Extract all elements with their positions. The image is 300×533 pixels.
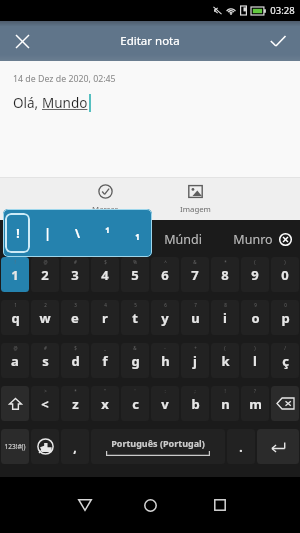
button[interactable]: ^ (151, 257, 179, 292)
button[interactable]: 123!#() (1, 429, 29, 464)
staticText: @ (43, 259, 48, 265)
button[interactable]: ( (211, 343, 239, 378)
staticText: ! (14, 259, 16, 265)
staticText: 1 (11, 266, 19, 284)
button[interactable]: 4 (91, 300, 119, 335)
button[interactable]: @ (31, 257, 59, 292)
staticText: 0 (281, 266, 289, 284)
staticText: . (239, 439, 243, 455)
staticText: m (249, 395, 262, 413)
button[interactable]: & (121, 343, 149, 378)
button[interactable]: $ (61, 343, 89, 378)
button[interactable]: ( (241, 257, 269, 292)
staticText: ' (134, 388, 136, 394)
staticText: 8 (224, 302, 227, 308)
button[interactable]: _ (91, 343, 119, 378)
button[interactable]: & (181, 257, 209, 292)
staticText: _ (104, 345, 106, 351)
staticText: \ (75, 225, 80, 241)
staticText: a (11, 352, 19, 370)
button[interactable]: : (151, 386, 179, 421)
button[interactable]: 9 (241, 300, 269, 335)
button[interactable]: " (91, 386, 119, 421)
button[interactable]: + (181, 343, 209, 378)
button[interactable]: * (211, 257, 239, 292)
staticText: 6 (161, 266, 169, 284)
button[interactable]: # (61, 257, 89, 292)
staticText: 123!#() (4, 442, 26, 451)
staticText: 7 (191, 266, 199, 284)
button[interactable]: ) (241, 343, 269, 378)
button[interactable]: Imagem (162, 177, 228, 219)
staticText: * (224, 259, 227, 265)
button[interactable]: 2 (31, 300, 59, 335)
button[interactable]: 1 (1, 300, 29, 335)
staticText: # (44, 345, 47, 351)
staticText: & (133, 345, 137, 351)
button[interactable]: Voltar (63, 483, 107, 527)
staticText: ( (254, 259, 256, 265)
button[interactable]: Shift (1, 386, 29, 421)
staticText: 14 de Dez de 2020, 02:45 (13, 73, 116, 85)
button[interactable]: % (121, 257, 149, 292)
button[interactable]: # (31, 343, 59, 378)
staticText: ! (224, 388, 226, 394)
button[interactable]: Fechar sugestões (275, 229, 295, 249)
staticText: g (131, 352, 140, 370)
staticText: ¹ (105, 225, 110, 241)
button[interactable]: , (61, 429, 89, 464)
button[interactable]: 8 (211, 300, 239, 335)
button[interactable]: ' (121, 386, 149, 421)
button[interactable]: Início (128, 483, 172, 527)
button[interactable]: Munro (219, 222, 287, 256)
button[interactable]: Cancelar (0, 21, 44, 61)
button[interactable]: / (271, 343, 299, 378)
staticText: r (102, 309, 108, 327)
staticText: e (71, 309, 79, 327)
button[interactable]: ! (211, 386, 239, 421)
button[interactable]: Marcar (72, 177, 138, 219)
button[interactable]: 7 (181, 300, 209, 335)
staticText: 4 (104, 302, 107, 308)
button[interactable]: 3 (61, 300, 89, 335)
button[interactable]: ! (1, 257, 29, 292)
staticText: v (161, 395, 169, 413)
button[interactable]: Backspace (271, 386, 299, 421)
staticText: * (74, 388, 77, 394)
button[interactable]: - (151, 343, 179, 378)
staticText: u (191, 309, 200, 327)
button[interactable]: 0 (271, 300, 299, 335)
staticText: # (74, 259, 77, 265)
button[interactable]: 5 (121, 300, 149, 335)
staticText: 0 (284, 302, 287, 308)
button[interactable]: * (61, 386, 89, 421)
staticText: 8 (221, 266, 229, 284)
button[interactable]: ? (241, 386, 269, 421)
button[interactable]: ; (181, 386, 209, 421)
staticText: Munro (233, 231, 273, 248)
staticText: w (39, 309, 51, 327)
button[interactable]: Múndi (150, 222, 216, 256)
button[interactable]: Recentes (198, 483, 242, 527)
button[interactable]: ) (271, 257, 299, 292)
button[interactable]: . (227, 429, 255, 464)
button[interactable]: @ (1, 343, 29, 378)
staticText: p (281, 309, 290, 327)
staticText: d (71, 352, 80, 370)
button[interactable]: Português (Portugal) (91, 429, 225, 464)
button[interactable]: 6 (151, 300, 179, 335)
staticText: Editar nota (120, 33, 180, 49)
button[interactable]: Mudar idioma (31, 429, 59, 464)
button[interactable]: > (31, 386, 59, 421)
staticText: 6 (164, 302, 167, 308)
staticText: 03:28 (270, 4, 295, 17)
staticText: & (193, 259, 197, 265)
button[interactable]: $ (91, 257, 119, 292)
staticText: Português (Portugal) (111, 437, 205, 449)
button[interactable]: Enter (257, 429, 299, 464)
staticText: Mundo (42, 94, 88, 112)
staticText: ç (282, 352, 289, 370)
staticText: 5 (131, 266, 139, 284)
staticText: Olá, (13, 94, 42, 112)
button[interactable]: Guardar (256, 21, 300, 61)
